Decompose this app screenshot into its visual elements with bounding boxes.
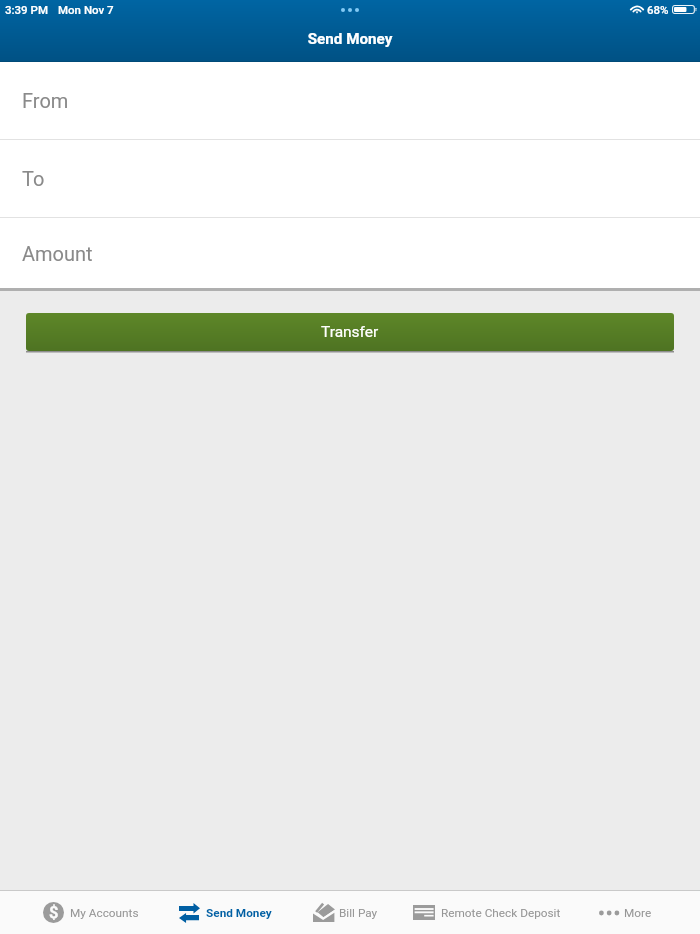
staticText: My Accounts	[70, 906, 139, 920]
staticText: Bill Pay	[339, 906, 378, 920]
button[interactable]: From	[0, 62, 700, 139]
button[interactable]: $	[43, 891, 139, 934]
button[interactable]: Amount	[0, 218, 700, 288]
button[interactable]: To	[0, 140, 700, 217]
staticText: More	[624, 906, 652, 920]
button[interactable]: Bill Pay	[313, 891, 378, 934]
staticText: From	[22, 89, 69, 112]
button[interactable]: Send Money	[179, 891, 272, 934]
staticText: Send Money	[0, 30, 700, 48]
staticText: $	[49, 903, 59, 922]
other: Battery 68 percent	[672, 5, 697, 14]
other: Wi-Fi	[631, 5, 643, 14]
button[interactable]: Remote Check Deposit	[413, 891, 561, 934]
button[interactable]: More	[599, 891, 652, 934]
staticText: To	[22, 167, 45, 190]
staticText: Send Money	[206, 906, 272, 920]
staticText: 68%	[647, 3, 669, 16]
staticText: Transfer	[321, 323, 379, 341]
staticText: 3:39 PM	[5, 3, 48, 16]
staticText: Remote Check Deposit	[441, 906, 561, 920]
button[interactable]: Transfer	[26, 313, 674, 351]
staticText: Amount	[22, 242, 93, 265]
staticText: Mon Nov 7	[58, 3, 114, 16]
